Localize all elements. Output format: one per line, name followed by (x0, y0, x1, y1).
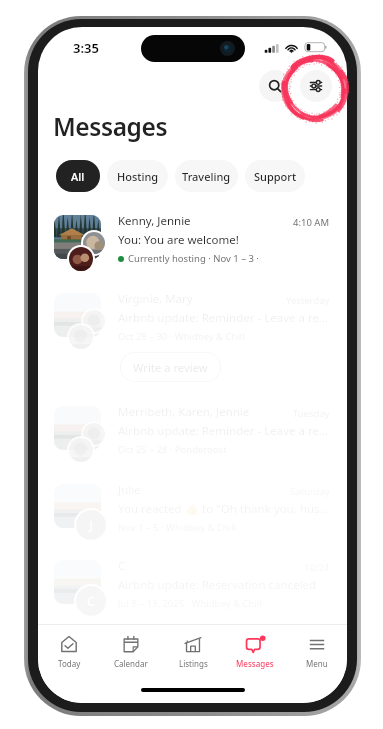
staticText: Menu (306, 658, 328, 669)
button[interactable]: Kenny, Jennie (38, 213, 347, 285)
button[interactable]: Support (245, 160, 305, 192)
staticText: Calendar (114, 658, 148, 669)
button[interactable]: Search (259, 70, 291, 102)
button[interactable]: Write a review (120, 352, 221, 382)
button[interactable]: Messages (224, 633, 286, 671)
button[interactable]: Filters (300, 70, 332, 102)
staticText: Oct 25 – 28 · Ponderoost (118, 443, 227, 456)
staticText: Currently hosting · Nov 1 – 3 · (128, 252, 259, 265)
staticText: 3:35 (73, 39, 99, 57)
button[interactable]: Listings (162, 633, 224, 671)
staticText: Support (254, 169, 297, 184)
button[interactable]: Merribeth, Karen, Jennie (38, 404, 347, 476)
staticText: Yesterday (286, 294, 330, 307)
button[interactable]: Traveling (175, 160, 238, 192)
button[interactable]: Today (38, 633, 100, 671)
button[interactable]: J (38, 482, 347, 554)
staticText: Messages (236, 658, 274, 669)
staticText: Oct 28 – 30 · Whidbey & Chill (118, 330, 245, 343)
staticText: You: You are welcome! (118, 232, 239, 248)
button[interactable]: C (38, 558, 347, 630)
staticText: All (71, 169, 85, 184)
staticText: Write a review (133, 360, 208, 375)
button[interactable]: Virginie, Mary (38, 291, 347, 363)
staticText: 4:10 AM (293, 216, 330, 229)
staticText: Airbnb update: Reminder - Leave a review (118, 423, 330, 439)
staticText: Messages (53, 110, 168, 143)
staticText: Listings (179, 658, 208, 669)
staticText: Kenny, Jennie (118, 213, 293, 229)
staticText: You reacted 👍 to "Oh thank you, husband!… (118, 501, 330, 517)
button[interactable]: All (56, 160, 100, 192)
staticText: Hosting (117, 169, 159, 184)
staticText: Airbnb update: Reminder - Leave a review (118, 310, 330, 326)
staticText: Today (58, 658, 81, 669)
staticText: J (89, 516, 93, 534)
staticText: Tuesday (293, 407, 330, 420)
button[interactable]: Calendar (100, 633, 162, 671)
staticText: Traveling (182, 169, 231, 184)
button[interactable]: Hosting (107, 160, 168, 192)
button[interactable]: Menu (286, 633, 347, 671)
staticText: Merribeth, Karen, Jennie (118, 404, 293, 420)
